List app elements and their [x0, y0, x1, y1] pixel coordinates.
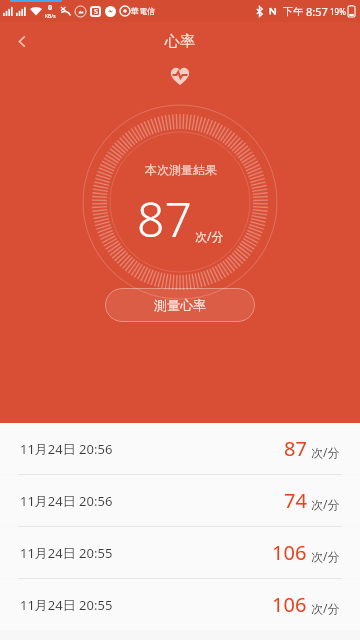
- button[interactable]: 測量心率: [105, 288, 255, 322]
- staticText: 11月24日 20:55: [20, 596, 113, 614]
- staticText: 11月24日 20:56: [20, 492, 113, 510]
- staticText: KB/s: [45, 13, 56, 20]
- staticText: 106: [272, 591, 307, 618]
- staticText: 106: [272, 539, 307, 566]
- staticText: 次/分: [311, 600, 340, 616]
- staticText: 0: [48, 3, 53, 13]
- staticText: 次/分: [311, 444, 340, 460]
- staticText: 19%: [330, 6, 346, 17]
- button[interactable]: 11月24日 20:55: [0, 527, 360, 578]
- button[interactable]: 11月24日 20:55: [0, 579, 360, 630]
- button[interactable]: 11月24日 20:56: [0, 475, 360, 526]
- button[interactable]: 11月24日 20:56: [0, 423, 360, 474]
- staticText: 87: [137, 186, 192, 251]
- staticText: 8:57: [306, 4, 328, 19]
- staticText: 測量心率: [154, 297, 206, 313]
- button[interactable]: Back: [0, 22, 44, 60]
- staticText: 心率: [165, 32, 195, 51]
- staticText: 87: [284, 435, 307, 462]
- staticText: 74: [284, 487, 307, 514]
- staticText: 11月24日 20:55: [20, 544, 113, 562]
- staticText: 次/分: [195, 228, 224, 244]
- staticText: 下午: [283, 5, 303, 18]
- staticText: 華電信: [131, 6, 155, 16]
- staticText: 次/分: [311, 496, 340, 512]
- staticText: S: [94, 7, 98, 17]
- staticText: 本次測量結果: [145, 162, 217, 177]
- staticText: 次/分: [311, 548, 340, 564]
- staticText: 11月24日 20:56: [20, 440, 113, 458]
